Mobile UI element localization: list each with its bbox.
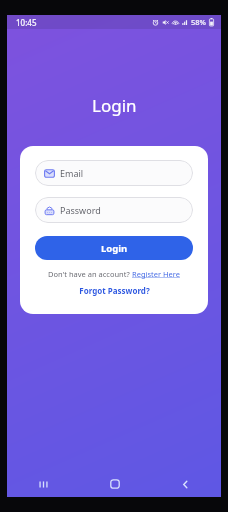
button[interactable]: Recent apps <box>7 471 79 497</box>
staticText: Password <box>60 204 101 216</box>
staticText: 58% <box>191 17 206 27</box>
button[interactable]: Email <box>35 160 193 186</box>
staticText: Login <box>101 242 128 255</box>
staticText: Forgot Password? <box>79 285 150 296</box>
staticText: Login <box>92 94 137 117</box>
staticText: Don't have an account? <box>48 269 132 279</box>
button[interactable]: Back <box>150 471 221 497</box>
staticText: Email <box>60 167 84 179</box>
staticText: 10:45 <box>16 17 37 28</box>
button[interactable]: Home <box>79 471 150 497</box>
staticText: Register Here <box>132 269 180 279</box>
button[interactable]: Register Here <box>132 269 180 279</box>
button[interactable]: Password <box>35 197 193 223</box>
button[interactable]: Login <box>35 236 193 260</box>
button[interactable]: Forgot Password? <box>79 285 150 296</box>
